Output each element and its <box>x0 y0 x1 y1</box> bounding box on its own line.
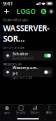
staticText: Guten Morgen <box>3 17 28 22</box>
button[interactable]: Schalter <box>3 51 53 61</box>
staticText: LOGO <box>16 7 35 16</box>
staticText: Läuft seit 2 Std <box>12 76 32 79</box>
staticText: WASSERVERSOR… <box>3 23 50 44</box>
staticText: WASSERSYSTEM <box>3 63 21 66</box>
staticText: Daten <box>30 111 39 114</box>
button[interactable]: Daten <box>28 104 42 115</box>
staticText: Start <box>4 111 10 114</box>
button[interactable]: Start <box>0 104 14 115</box>
button[interactable]: Geräte <box>14 104 28 115</box>
staticText: Schalter <box>12 51 28 56</box>
staticText: AKTIVE SYSTEME <box>3 46 24 50</box>
staticText: Betriebsbereit <box>12 57 33 60</box>
staticText: Geräte <box>16 111 26 114</box>
button[interactable]: Settings <box>48 9 54 14</box>
button[interactable]: Mehr <box>42 104 56 115</box>
staticText: Wasserpumpe <box>12 65 37 75</box>
staticText: A <box>42 9 45 14</box>
button[interactable]: Add <box>2 7 11 16</box>
staticText: Mehr <box>45 111 52 114</box>
button[interactable]: Account <box>41 9 46 14</box>
staticText: 9:41 <box>3 0 13 7</box>
button[interactable]: Wasserpumpe <box>3 67 53 77</box>
